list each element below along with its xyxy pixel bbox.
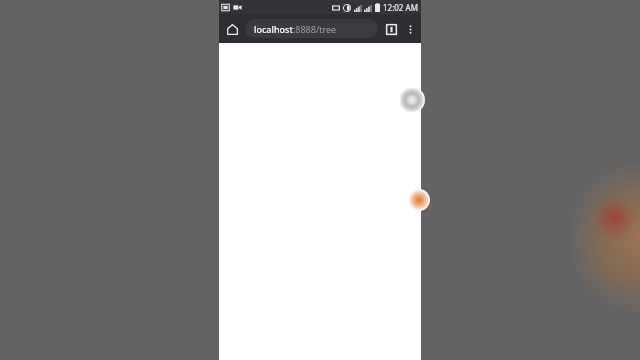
staticText: localhost:8888/tree: [254, 23, 337, 35]
staticText: 12:02 AM: [383, 2, 418, 13]
button[interactable]: Tabs: [381, 19, 401, 39]
button[interactable]: localhost:8888/tree: [245, 19, 378, 38]
button[interactable]: More options: [401, 20, 419, 38]
button[interactable]: Home: [221, 18, 243, 40]
